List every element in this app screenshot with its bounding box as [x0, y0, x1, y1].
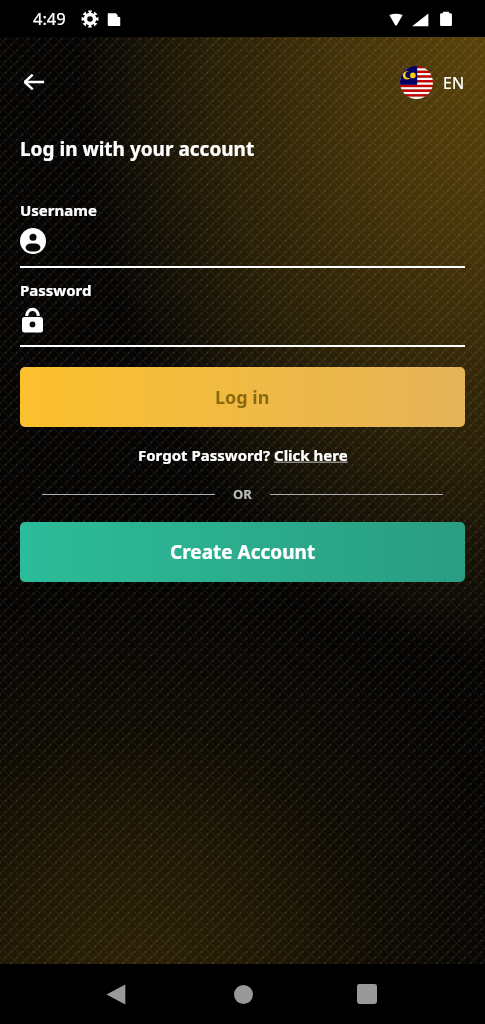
staticText: Forgot Password?: [138, 445, 274, 465]
button[interactable]: Back: [12, 60, 56, 104]
staticText: Username: [20, 200, 97, 220]
staticText: EN: [443, 72, 465, 94]
button[interactable]: Recents: [343, 970, 391, 1018]
staticText: Create Account: [170, 539, 316, 565]
staticText: Log in: [215, 385, 270, 410]
button[interactable]: Log in: [20, 367, 465, 427]
button[interactable]: Home: [219, 970, 267, 1018]
staticText: OR: [233, 485, 252, 503]
staticText: Log in with your account: [20, 136, 255, 162]
button[interactable]: Back: [92, 970, 140, 1018]
button[interactable]: Click here: [274, 445, 348, 465]
button[interactable]: EN: [400, 66, 465, 99]
staticText: Password: [20, 280, 92, 300]
staticText: 4:49: [33, 7, 66, 29]
button[interactable]: Create Account: [20, 522, 465, 582]
